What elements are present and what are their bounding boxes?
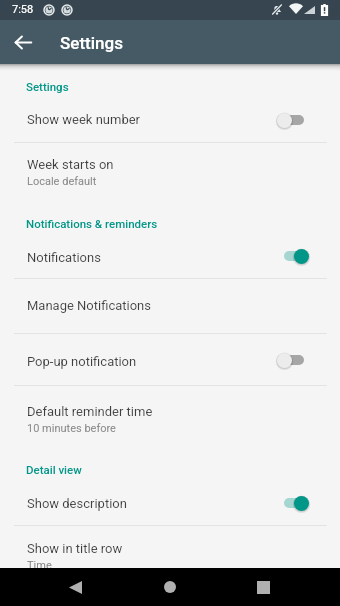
staticText: Show description [27, 496, 127, 511]
button[interactable]: Show description [0, 480, 340, 525]
staticText: Detail view [26, 463, 82, 476]
button[interactable]: Week starts on [0, 143, 340, 191]
staticText: Notifications & reminders [26, 217, 158, 230]
staticText: Show week number [27, 112, 141, 127]
button[interactable]: Home [150, 568, 190, 606]
staticText: Settings [26, 80, 69, 93]
button[interactable]: Show in title row [0, 526, 340, 568]
button[interactable]: Back [55, 568, 95, 606]
button[interactable]: Manage Notifications [0, 279, 340, 333]
staticText: Time [27, 559, 52, 572]
staticText: Default reminder time [27, 404, 153, 419]
staticText: 10 minutes before [27, 422, 116, 435]
button[interactable]: Back [6, 25, 40, 59]
staticText: Show in title row [27, 541, 123, 556]
button[interactable]: Default reminder time [0, 386, 340, 434]
button[interactable]: Recents [243, 568, 283, 606]
staticText: Notifications [27, 250, 101, 265]
staticText: Settings [60, 33, 123, 53]
staticText: Manage Notifications [27, 298, 151, 313]
staticText: 7:58 [12, 3, 34, 16]
button[interactable]: Show week number [0, 98, 340, 142]
staticText: Pop-up notification [27, 354, 137, 369]
staticText: Locale default [27, 175, 97, 188]
staticText: Week starts on [27, 157, 114, 172]
button[interactable]: Notifications [0, 234, 340, 278]
button[interactable]: Pop-up notification [0, 334, 340, 385]
